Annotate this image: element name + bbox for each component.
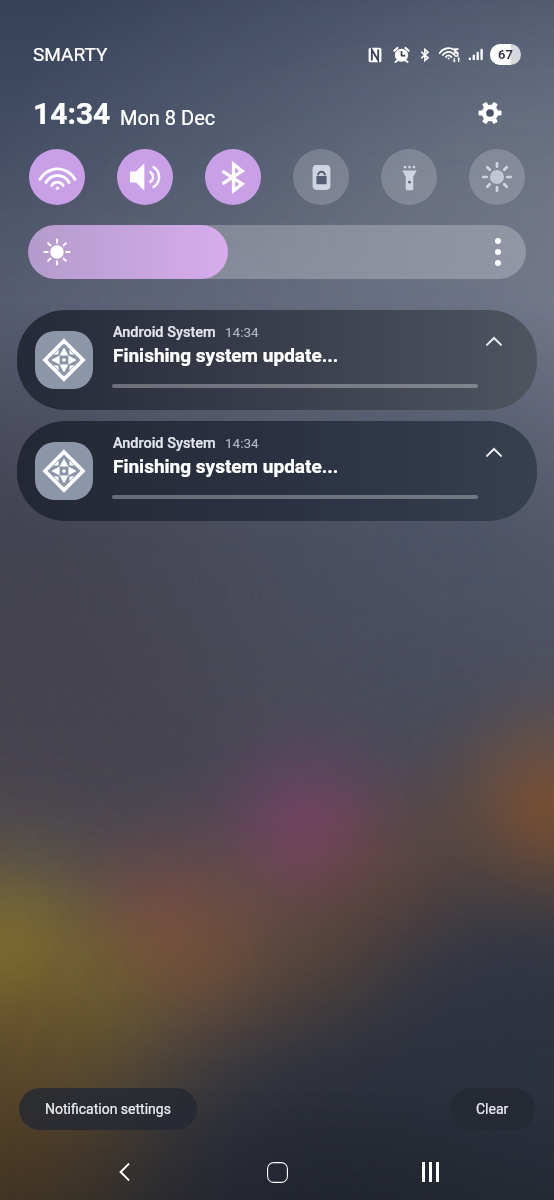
staticText: 14:34 [33, 96, 111, 131]
button[interactable]: Brightness [469, 149, 525, 205]
button[interactable]: Android System [17, 421, 537, 521]
staticText: Finishing system update... [113, 344, 339, 366]
staticText: Finishing system update... [113, 455, 339, 477]
staticText: Notification settings [45, 1101, 171, 1117]
staticText: SMARTY [33, 43, 108, 65]
button[interactable]: Clear [450, 1088, 535, 1130]
staticText: Mon 8 Dec [120, 106, 216, 129]
button[interactable]: Flashlight [381, 149, 437, 205]
staticText: 67 [498, 47, 513, 62]
button[interactable]: Notification settings [19, 1088, 197, 1130]
button[interactable]: Back [97, 1144, 153, 1200]
button[interactable]: Recents [402, 1144, 458, 1200]
staticText: Clear [476, 1101, 509, 1117]
button[interactable]: Android System [17, 310, 537, 410]
staticText: Android System [113, 324, 216, 341]
button[interactable]: Brightness [28, 225, 526, 279]
button[interactable]: Settings [470, 94, 510, 132]
button[interactable]: Expand [478, 326, 510, 358]
staticText: Android System [113, 435, 216, 452]
button[interactable]: Bluetooth [205, 149, 261, 205]
button[interactable]: Sound [117, 149, 173, 205]
staticText: 14:34 [225, 324, 259, 340]
staticText: 14:34 [225, 435, 259, 451]
button[interactable]: Wi-Fi [29, 149, 85, 205]
button[interactable]: Expand [478, 437, 510, 469]
button[interactable]: Home [249, 1144, 305, 1200]
button[interactable]: Auto rotate lock [293, 149, 349, 205]
